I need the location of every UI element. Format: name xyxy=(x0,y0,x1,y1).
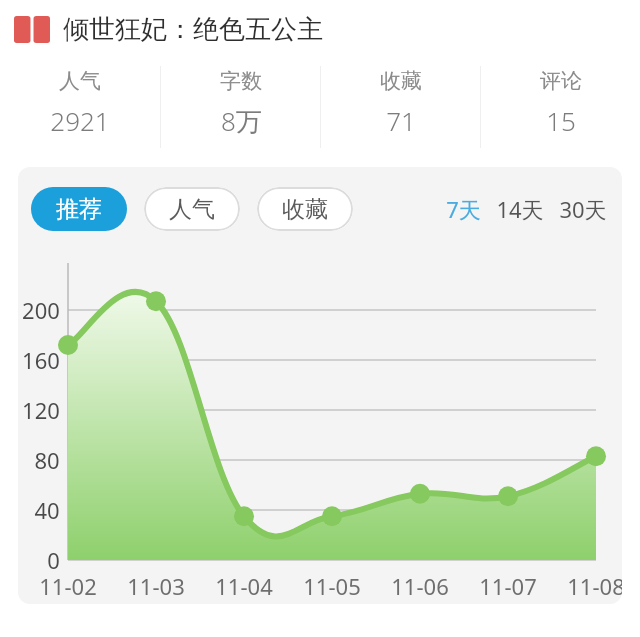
button[interactable]: 7天 xyxy=(443,186,484,232)
staticText: 80 xyxy=(34,445,60,475)
staticText: 11-08 xyxy=(567,571,622,601)
staticText: 11-02 xyxy=(39,571,97,601)
staticText: 11-03 xyxy=(127,571,185,601)
staticText: 200 xyxy=(22,295,60,325)
staticText: 14天 xyxy=(496,194,544,224)
staticText: 11-06 xyxy=(391,571,449,601)
staticText: 人气 xyxy=(169,195,215,224)
staticText: 71 xyxy=(386,103,416,138)
staticText: 40 xyxy=(34,495,60,525)
staticText: 160 xyxy=(22,345,60,375)
staticText: 人气 xyxy=(59,68,101,94)
staticText: 收藏 xyxy=(380,68,422,94)
staticText: 字数 xyxy=(220,68,262,94)
button[interactable]: 30天 xyxy=(556,186,610,232)
button[interactable]: 收藏 xyxy=(321,58,480,156)
staticText: 15 xyxy=(546,103,576,138)
other: Book xyxy=(14,16,50,43)
staticText: 0 xyxy=(47,545,60,575)
staticText: 8万 xyxy=(221,103,262,139)
staticText: 倾世狂妃：绝色五公主 xyxy=(63,13,323,46)
button[interactable]: 14天 xyxy=(493,186,547,232)
staticText: 120 xyxy=(22,395,60,425)
staticText: 11-04 xyxy=(215,571,273,601)
staticText: 收藏 xyxy=(282,195,328,224)
button[interactable]: 推荐 xyxy=(31,187,127,231)
staticText: 推荐 xyxy=(56,195,102,224)
button[interactable]: 人气 xyxy=(144,187,240,231)
staticText: 评论 xyxy=(540,68,582,94)
button[interactable]: 评论 xyxy=(481,58,640,156)
staticText: 30天 xyxy=(559,194,607,224)
staticText: 11-05 xyxy=(303,571,361,601)
button[interactable]: 字数 xyxy=(161,58,320,156)
button[interactable]: 收藏 xyxy=(257,187,353,231)
staticText: 2921 xyxy=(50,103,110,138)
button[interactable]: Book xyxy=(0,0,640,58)
staticText: 11-07 xyxy=(479,571,537,601)
button[interactable]: 人气 xyxy=(0,58,160,156)
staticText: 7天 xyxy=(446,194,481,224)
